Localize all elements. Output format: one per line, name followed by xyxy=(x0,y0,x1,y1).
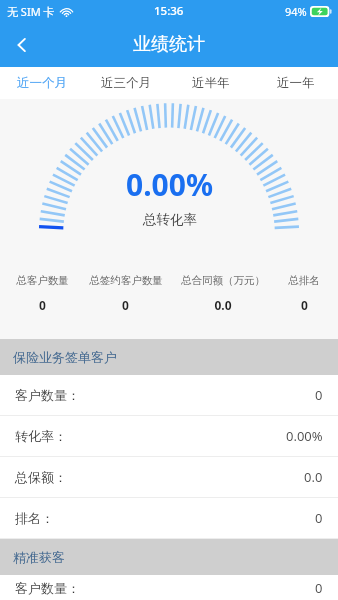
staticText: 转化率： xyxy=(15,428,67,444)
staticText: 精准获客 xyxy=(13,549,65,565)
button[interactable]: 总保额： xyxy=(0,457,338,497)
staticText: 15:36 xyxy=(154,3,184,19)
button[interactable]: Back xyxy=(0,23,44,67)
staticText: 总客户数量 xyxy=(16,274,69,287)
button[interactable]: 近三个月 xyxy=(84,67,168,99)
staticText: 总排名 xyxy=(288,274,320,287)
button[interactable]: 客户数量： xyxy=(0,375,338,415)
button[interactable]: 近一个月 xyxy=(0,67,84,99)
staticText: 保险业务签单客户 xyxy=(13,349,117,365)
staticText: 总转化率 xyxy=(143,211,197,228)
staticText: 0.0 xyxy=(214,297,232,313)
staticText: 0 xyxy=(301,297,308,313)
staticText: 0 xyxy=(315,509,323,527)
button[interactable]: 近一年 xyxy=(253,67,338,99)
staticText: 排名： xyxy=(15,510,54,526)
staticText: 近一个月 xyxy=(17,75,67,91)
staticText: 0.0 xyxy=(304,468,323,486)
staticText: 客户数量： xyxy=(15,580,80,596)
staticText: 0 xyxy=(315,386,323,404)
staticText: 0 xyxy=(39,297,46,313)
button[interactable]: 保险业务签单客户 xyxy=(0,339,338,375)
button[interactable]: 客户数量： xyxy=(0,575,338,600)
staticText: 0.00% xyxy=(286,427,323,445)
staticText: 0 xyxy=(122,297,129,313)
staticText: 总合同额（万元） xyxy=(181,274,265,287)
staticText: 业绩统计 xyxy=(133,33,205,56)
button[interactable]: 近半年 xyxy=(168,67,253,99)
staticText: 94% xyxy=(285,4,307,19)
staticText: 近一年 xyxy=(277,75,315,91)
button[interactable]: 排名： xyxy=(0,498,338,538)
staticText: 0.00% xyxy=(126,164,213,205)
staticText: 客户数量： xyxy=(15,387,80,403)
staticText: 近三个月 xyxy=(101,75,151,91)
button[interactable]: 精准获客 xyxy=(0,539,338,575)
staticText: 近半年 xyxy=(192,75,230,91)
staticText: 总签约客户数量 xyxy=(89,274,163,287)
button[interactable]: 转化率： xyxy=(0,416,338,456)
staticText: 0 xyxy=(315,579,323,597)
staticText: 总保额： xyxy=(15,469,67,485)
staticText: 无 SIM 卡 xyxy=(7,4,55,19)
